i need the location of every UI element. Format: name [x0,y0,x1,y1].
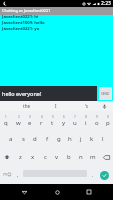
button[interactable]: Back [16,184,32,200]
staticText: 4 [41,115,43,119]
button[interactable]: ‘s [71,101,101,111]
button[interactable]: 1 [0,111,12,130]
staticText: hello everyone! [2,90,42,97]
button[interactable]: Send message [97,166,111,184]
button[interactable]: Recent apps [81,184,97,200]
staticText: I [55,103,57,109]
button[interactable]: n [75,148,87,166]
staticText: r [40,119,43,127]
staticText: t [51,119,54,127]
button[interactable]: 5 [47,111,58,130]
button[interactable]: b [63,148,75,166]
staticText: 2 [18,115,20,119]
staticText: b [67,153,71,161]
button[interactable]: v [51,148,63,166]
staticText: i [85,119,87,127]
staticText: the [23,103,31,109]
button[interactable]: a [5,130,17,148]
button[interactable]: c [39,148,51,166]
staticText: SEND [101,92,110,96]
staticText: Javaclient0221: hi [2,14,39,20]
staticText: Javaclient1009: hello [2,20,45,26]
staticText: m [90,153,96,161]
staticText: 0 [107,115,109,119]
staticText: e [28,119,32,127]
button[interactable]: x [27,148,39,166]
button[interactable]: 6 [58,111,69,130]
staticText: k [90,135,94,143]
staticText: 7 [74,115,76,119]
button[interactable]: h [64,130,75,148]
button[interactable]: z [14,148,27,166]
staticText: n [79,153,83,161]
staticText: o [95,119,99,127]
button[interactable]: j [75,130,86,148]
button[interactable]: 7 [69,111,80,130]
staticText: u [73,119,77,127]
staticText: . [92,172,94,179]
button[interactable]: Shift [0,148,14,166]
button[interactable]: 4 [36,111,47,130]
staticText: a [9,135,13,143]
button[interactable]: 2 [12,111,24,130]
button[interactable]: I [41,101,71,111]
button[interactable]: Home [49,184,65,200]
button[interactable]: s [17,130,29,148]
button[interactable]: g [53,130,64,148]
staticText: 6 [63,115,65,119]
staticText: j [80,135,82,143]
button[interactable]: 0 [102,111,113,130]
staticText: l [102,135,104,143]
staticText: p [106,119,110,127]
staticText: Javaclient0221: yo [2,26,40,32]
button[interactable]: Voice input [97,101,112,111]
button[interactable]: Send [99,87,112,100]
staticText: d [33,135,37,143]
button[interactable]: 9 [91,111,102,130]
staticText: q [4,119,8,127]
staticText: f [46,135,49,143]
button[interactable]: 3 [24,111,36,130]
staticText: ?1☺ [3,172,12,178]
staticText: z [19,153,22,161]
button[interactable]: hello everyone! [0,86,97,101]
button[interactable]: , [14,166,21,184]
button[interactable]: m [87,148,99,166]
staticText: v [55,153,59,161]
staticText: ‘s [85,103,88,109]
staticText: s [22,135,25,143]
button[interactable]: Backspace [99,148,113,166]
staticText: y [62,119,66,127]
button[interactable]: k [86,130,97,148]
button[interactable]: . [89,166,96,184]
staticText: 3 [29,115,31,119]
button[interactable]: Chatting as Javaclient0221 [0,7,113,15]
staticText: Chatting as Javaclient0221 [2,8,51,13]
staticText: 1 [5,115,7,119]
staticText: 8 [85,115,87,119]
button[interactable]: 8 [80,111,91,130]
button[interactable]: the [12,101,41,111]
staticText: 2:23 [101,0,111,7]
button[interactable]: d [29,130,41,148]
staticText: 9 [96,115,98,119]
staticText: w [16,119,21,127]
staticText: 5 [52,115,54,119]
staticText: x [31,153,35,161]
button[interactable]: l [97,130,108,148]
staticText: c [44,153,47,161]
staticText: g [57,135,61,143]
button[interactable]: f [41,130,53,148]
staticText: h [68,135,72,143]
staticText: , [17,172,19,179]
button[interactable]: ?1☺ [0,166,15,184]
